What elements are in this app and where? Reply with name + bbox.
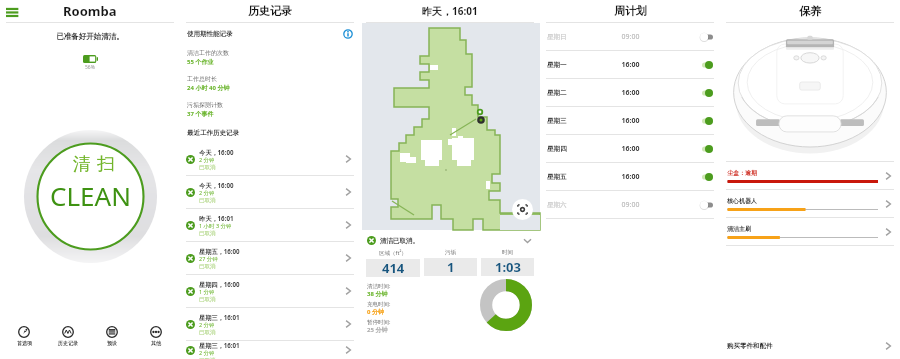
staticText: CLEAN bbox=[50, 178, 131, 213]
staticText: 星期三，16:01 bbox=[199, 341, 240, 349]
staticText: 首选项 bbox=[17, 340, 32, 346]
staticText: 已取消 bbox=[199, 329, 216, 336]
button[interactable]: Locate robot bbox=[512, 199, 533, 220]
staticText: Roomba bbox=[63, 2, 117, 20]
button[interactable]: 星期四，16:00 bbox=[180, 275, 360, 307]
staticText: 星期五 bbox=[547, 173, 603, 181]
staticText: 16:00 bbox=[603, 172, 658, 182]
button[interactable]: 其他 bbox=[136, 319, 176, 352]
staticText: 2 分钟 bbox=[199, 156, 215, 164]
staticText: 清洁主刷 bbox=[727, 225, 751, 233]
staticText: 25 分钟 bbox=[367, 326, 388, 334]
staticText: 星期二 bbox=[547, 89, 603, 97]
button[interactable]: 清扫 bbox=[24, 130, 157, 263]
staticText: 星期六 bbox=[547, 201, 603, 209]
staticText: 星期五，16:00 bbox=[199, 247, 240, 255]
staticText: 今天，16:00 bbox=[199, 181, 234, 189]
staticText: 清洁已取消。 bbox=[380, 237, 419, 245]
staticText: 周计划 bbox=[614, 4, 647, 18]
staticText: 星期三 bbox=[547, 117, 603, 125]
button[interactable]: 星期二 bbox=[540, 79, 720, 106]
staticText: 已取消 bbox=[199, 357, 216, 359]
staticText: 56% bbox=[85, 64, 95, 71]
staticText: 已准备好开始清洁。 bbox=[0, 32, 180, 41]
button[interactable]: 星期四 bbox=[540, 135, 720, 162]
staticText: 尘盒：逾期 bbox=[727, 169, 757, 177]
staticText: 今天，16:00 bbox=[199, 148, 234, 156]
staticText: 1 bbox=[447, 258, 455, 276]
button[interactable]: 星期一 bbox=[540, 51, 720, 78]
staticText: 清洁时间: bbox=[367, 282, 391, 290]
staticText: 购买零件和配件 bbox=[727, 342, 773, 350]
staticText: 1 分钟 bbox=[199, 288, 215, 296]
staticText: 工作总时长 bbox=[187, 75, 217, 83]
staticText: 已取消 bbox=[199, 296, 216, 303]
staticText: 预设 bbox=[107, 340, 117, 346]
button[interactable]: 预设 bbox=[92, 319, 132, 352]
button[interactable]: 星期三 bbox=[540, 107, 720, 134]
staticText: 16:00 bbox=[603, 88, 658, 98]
button[interactable]: 购买零件和配件 bbox=[720, 332, 900, 359]
staticText: 09:00 bbox=[603, 32, 658, 42]
staticText: 0 分钟 bbox=[367, 308, 384, 316]
staticText: 已取消 bbox=[199, 263, 216, 270]
staticText: 星期四，16:00 bbox=[199, 280, 240, 288]
staticText: 历史记录 bbox=[58, 340, 78, 346]
staticText: 保养 bbox=[799, 4, 821, 18]
button[interactable]: 昨天，16:01 bbox=[180, 209, 360, 241]
staticText: 27 分钟 bbox=[199, 255, 218, 263]
button[interactable]: 星期五，16:00 bbox=[180, 242, 360, 274]
staticText: 污垢 bbox=[445, 249, 456, 256]
staticText: 昨天，16:01 bbox=[422, 4, 478, 18]
staticText: 37 个事件 bbox=[187, 110, 214, 118]
staticText: 星期四 bbox=[547, 145, 603, 153]
button[interactable]: Info bbox=[343, 29, 353, 39]
staticText: 2 分钟 bbox=[199, 189, 215, 197]
staticText: 已取消 bbox=[199, 230, 216, 237]
staticText: 时间 bbox=[502, 249, 513, 256]
staticText: 38 分钟 bbox=[367, 290, 388, 298]
button[interactable]: 历史记录 bbox=[48, 319, 88, 352]
staticText: 区域（ft²） bbox=[379, 249, 407, 257]
staticText: 污垢探测计数 bbox=[187, 101, 223, 109]
staticText: 已取消 bbox=[199, 197, 216, 204]
staticText: 55 个作业 bbox=[187, 58, 214, 66]
button[interactable]: 尘盒：逾期 bbox=[720, 162, 900, 189]
staticText: 清扫 bbox=[70, 153, 118, 176]
staticText: 核心机器人 bbox=[727, 197, 757, 205]
button[interactable]: Collapse bbox=[522, 235, 533, 246]
staticText: 24 小时 40 分钟 bbox=[187, 84, 230, 92]
button[interactable]: 清洁主刷 bbox=[720, 218, 900, 245]
button[interactable]: Menu bbox=[6, 5, 19, 18]
button[interactable]: 星期日 bbox=[540, 23, 720, 50]
staticText: 昨天，16:01 bbox=[199, 214, 234, 222]
staticText: 1:03 bbox=[495, 258, 521, 276]
staticText: 星期日 bbox=[547, 33, 603, 41]
staticText: 16:00 bbox=[603, 60, 658, 70]
staticText: 16:00 bbox=[603, 116, 658, 126]
staticText: 16:00 bbox=[603, 144, 658, 154]
staticText: 最近工作历史记录 bbox=[187, 129, 239, 137]
staticText: 清洁工作的次数 bbox=[187, 49, 229, 57]
button[interactable]: 今天，16:00 bbox=[180, 176, 360, 208]
staticText: 历史记录 bbox=[248, 4, 292, 18]
staticText: 2 分钟 bbox=[199, 321, 215, 329]
staticText: 使用期性能记录 bbox=[187, 30, 233, 38]
button[interactable]: 星期三，16:01 bbox=[180, 308, 360, 340]
button[interactable]: 今天，16:00 bbox=[180, 143, 360, 175]
button[interactable]: 星期五 bbox=[540, 163, 720, 190]
staticText: 星期三，16:01 bbox=[199, 313, 240, 321]
button[interactable]: 核心机器人 bbox=[720, 190, 900, 217]
staticText: 暂停时间: bbox=[367, 318, 391, 326]
staticText: 其他 bbox=[151, 340, 161, 346]
button[interactable]: 星期三，16:01 bbox=[180, 341, 360, 359]
staticText: 1 小时 3 分钟 bbox=[199, 222, 232, 230]
staticText: 星期一 bbox=[547, 61, 603, 69]
button[interactable]: 首选项 bbox=[4, 319, 44, 352]
staticText: 09:00 bbox=[603, 200, 658, 210]
staticText: 2 分钟 bbox=[199, 349, 215, 357]
staticText: 已取消 bbox=[199, 164, 216, 171]
staticText: 414 bbox=[382, 259, 405, 277]
button[interactable]: 星期六 bbox=[540, 191, 720, 218]
staticText: 充电时间: bbox=[367, 300, 391, 308]
